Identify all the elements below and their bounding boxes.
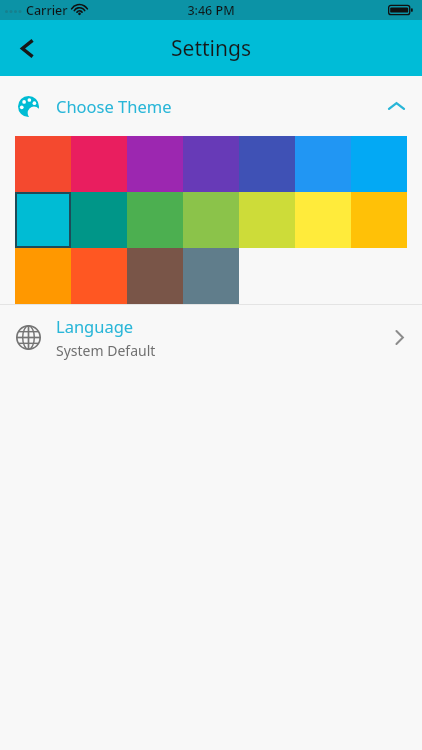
button[interactable]: Back (0, 21, 54, 75)
staticText: Settings (171, 34, 251, 63)
staticText: Language (56, 315, 134, 337)
staticText: Carrier (26, 2, 68, 19)
staticText: Choose Theme (56, 95, 172, 117)
button[interactable]: Language (0, 305, 422, 369)
button[interactable]: Choose Theme (0, 76, 422, 136)
staticText: 3:46 PM (187, 2, 235, 19)
staticText: System Default (56, 341, 156, 360)
button[interactable]: Theme colour 8 (15, 192, 71, 248)
